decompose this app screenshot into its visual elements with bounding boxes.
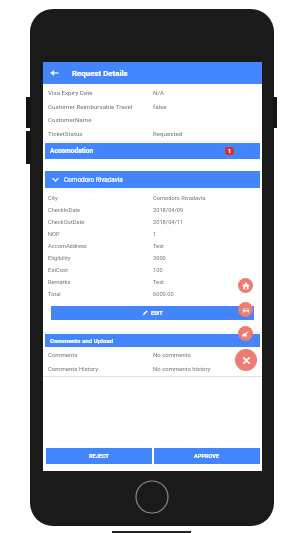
staticText: 1 <box>228 148 231 154</box>
staticText: Accomodation <box>50 147 94 155</box>
staticText: 100 <box>153 267 163 274</box>
staticText: CheckInDate <box>48 207 81 214</box>
staticText: 2018/04/09 <box>153 207 184 214</box>
staticText: No comments <box>153 351 191 358</box>
button[interactable]: Back <box>43 62 65 84</box>
button[interactable]: Car <box>238 302 253 317</box>
staticText: Remarks <box>48 279 71 286</box>
staticText: City <box>48 195 58 202</box>
staticText: CustomerName <box>48 116 92 123</box>
staticText: Test <box>153 279 164 286</box>
button[interactable]: REJECT <box>46 448 152 464</box>
staticText: 1 <box>153 231 157 238</box>
staticText: AccomAddress <box>48 243 87 250</box>
staticText: No comments history <box>153 365 211 372</box>
staticText: EDIT <box>151 310 163 317</box>
button[interactable]: APPROVE <box>154 448 260 464</box>
button[interactable]: EDIT <box>51 306 254 320</box>
staticText: Comments <box>48 351 78 358</box>
staticText: CheckOutDate <box>48 219 85 226</box>
staticText: APPROVE <box>194 453 220 460</box>
staticText: Test <box>153 243 164 250</box>
staticText: Comodoro Rivadavia <box>153 195 206 202</box>
staticText: EstCost <box>48 267 68 274</box>
staticText: Visa Expiry Date <box>48 89 93 96</box>
staticText: Comodoro Rivadavia <box>64 176 123 184</box>
staticText: Comments History <box>48 365 98 372</box>
staticText: 6000.00 <box>153 291 174 298</box>
staticText: REJECT <box>89 453 110 460</box>
button[interactable]: Home <box>238 278 253 293</box>
staticText: 2018/04/11 <box>153 219 184 226</box>
staticText: Requested <box>153 130 183 137</box>
button[interactable]: Comodoro Rivadavia <box>45 171 260 188</box>
button[interactable]: Flight <box>238 326 253 341</box>
staticText: TicketStatus <box>48 130 83 137</box>
staticText: 3000 <box>153 255 166 262</box>
staticText: Total <box>48 291 61 298</box>
button[interactable]: Close <box>235 349 257 371</box>
staticText: false <box>153 103 167 110</box>
staticText: Comments and Upload <box>50 337 114 344</box>
staticText: Customer Reimbursable Travel <box>48 103 133 110</box>
staticText: Request Details <box>72 69 128 78</box>
staticText: NOP <box>48 231 60 238</box>
staticText: Eligibility <box>48 255 71 262</box>
button[interactable]: Comments and Upload <box>45 334 260 347</box>
staticText: N/A <box>153 89 165 96</box>
button[interactable]: Accomodation <box>45 143 260 159</box>
